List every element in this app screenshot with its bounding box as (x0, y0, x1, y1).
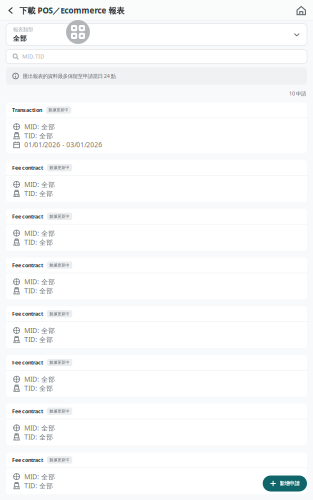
staticText: MID: 全部 (24, 326, 55, 335)
staticText: Fee contract (12, 408, 43, 415)
staticText: Fee contract (12, 456, 43, 463)
staticText: 下載 POS／Ecommerce 報表 (19, 5, 124, 16)
button[interactable]: Fee contract (6, 258, 307, 299)
button[interactable]: Transaction (6, 102, 307, 153)
staticText: MID: 全部 (24, 277, 55, 286)
staticText: MID: 全部 (24, 375, 55, 384)
button[interactable]: 返回 (0, 1, 19, 20)
button[interactable]: Fee contract (6, 306, 307, 348)
staticText: TID: 全部 (24, 286, 53, 295)
staticText: MID: 全部 (24, 229, 55, 238)
staticText: 數據更新中 (50, 409, 70, 414)
staticText: 數據更新中 (50, 165, 70, 170)
button[interactable]: 首頁 (289, 1, 313, 20)
staticText: Fee contract (12, 359, 43, 366)
staticText: 數據更新中 (50, 263, 70, 267)
staticText: 數據更新中 (50, 457, 70, 462)
staticText: Fee contract (12, 164, 43, 171)
staticText: TID: 全部 (24, 131, 53, 140)
staticText: MID: 全部 (24, 122, 55, 131)
staticText: TID: 全部 (24, 335, 53, 344)
button[interactable]: Fee contract (6, 404, 307, 445)
staticText: 報表類型 (13, 26, 33, 33)
button[interactable]: 新增申請 (263, 475, 307, 491)
staticText: TID: 全部 (24, 384, 53, 393)
staticText: 全部 (13, 34, 27, 43)
staticText: Fee contract (12, 213, 43, 220)
button[interactable]: Fee contract (6, 452, 307, 494)
staticText: MID: 全部 (24, 472, 55, 481)
staticText: 數據更新中 (50, 214, 70, 219)
staticText: 數據更新中 (50, 311, 70, 316)
staticText: Fee contract (12, 310, 43, 317)
staticText: Transaction (12, 106, 42, 114)
staticText: TID: 全部 (24, 481, 53, 490)
staticText: MID: 全部 (24, 180, 55, 189)
staticText: 新增申請 (279, 480, 299, 487)
button[interactable]: 報表類型 (6, 23, 307, 45)
staticText: 匯出報表的資料最多保留至申請當日 24 點 (23, 72, 116, 80)
button[interactable]: MID, TID (6, 49, 307, 63)
button[interactable]: Fee contract (6, 160, 307, 202)
staticText: 數據更新中 (49, 107, 69, 112)
staticText: 10 申請 (289, 90, 306, 97)
staticText: TID: 全部 (24, 238, 53, 247)
button[interactable]: Fee contract (6, 355, 307, 397)
button[interactable]: Fee contract (6, 209, 307, 251)
staticText: MID: 全部 (24, 423, 55, 432)
staticText: 數據更新中 (50, 360, 70, 365)
staticText: MID, TID (22, 53, 44, 60)
staticText: Fee contract (12, 262, 43, 269)
staticText: TID: 全部 (24, 432, 53, 441)
staticText: TID: 全部 (24, 189, 53, 198)
staticText: 01/01/2026 - 03/01/2026 (24, 140, 102, 149)
